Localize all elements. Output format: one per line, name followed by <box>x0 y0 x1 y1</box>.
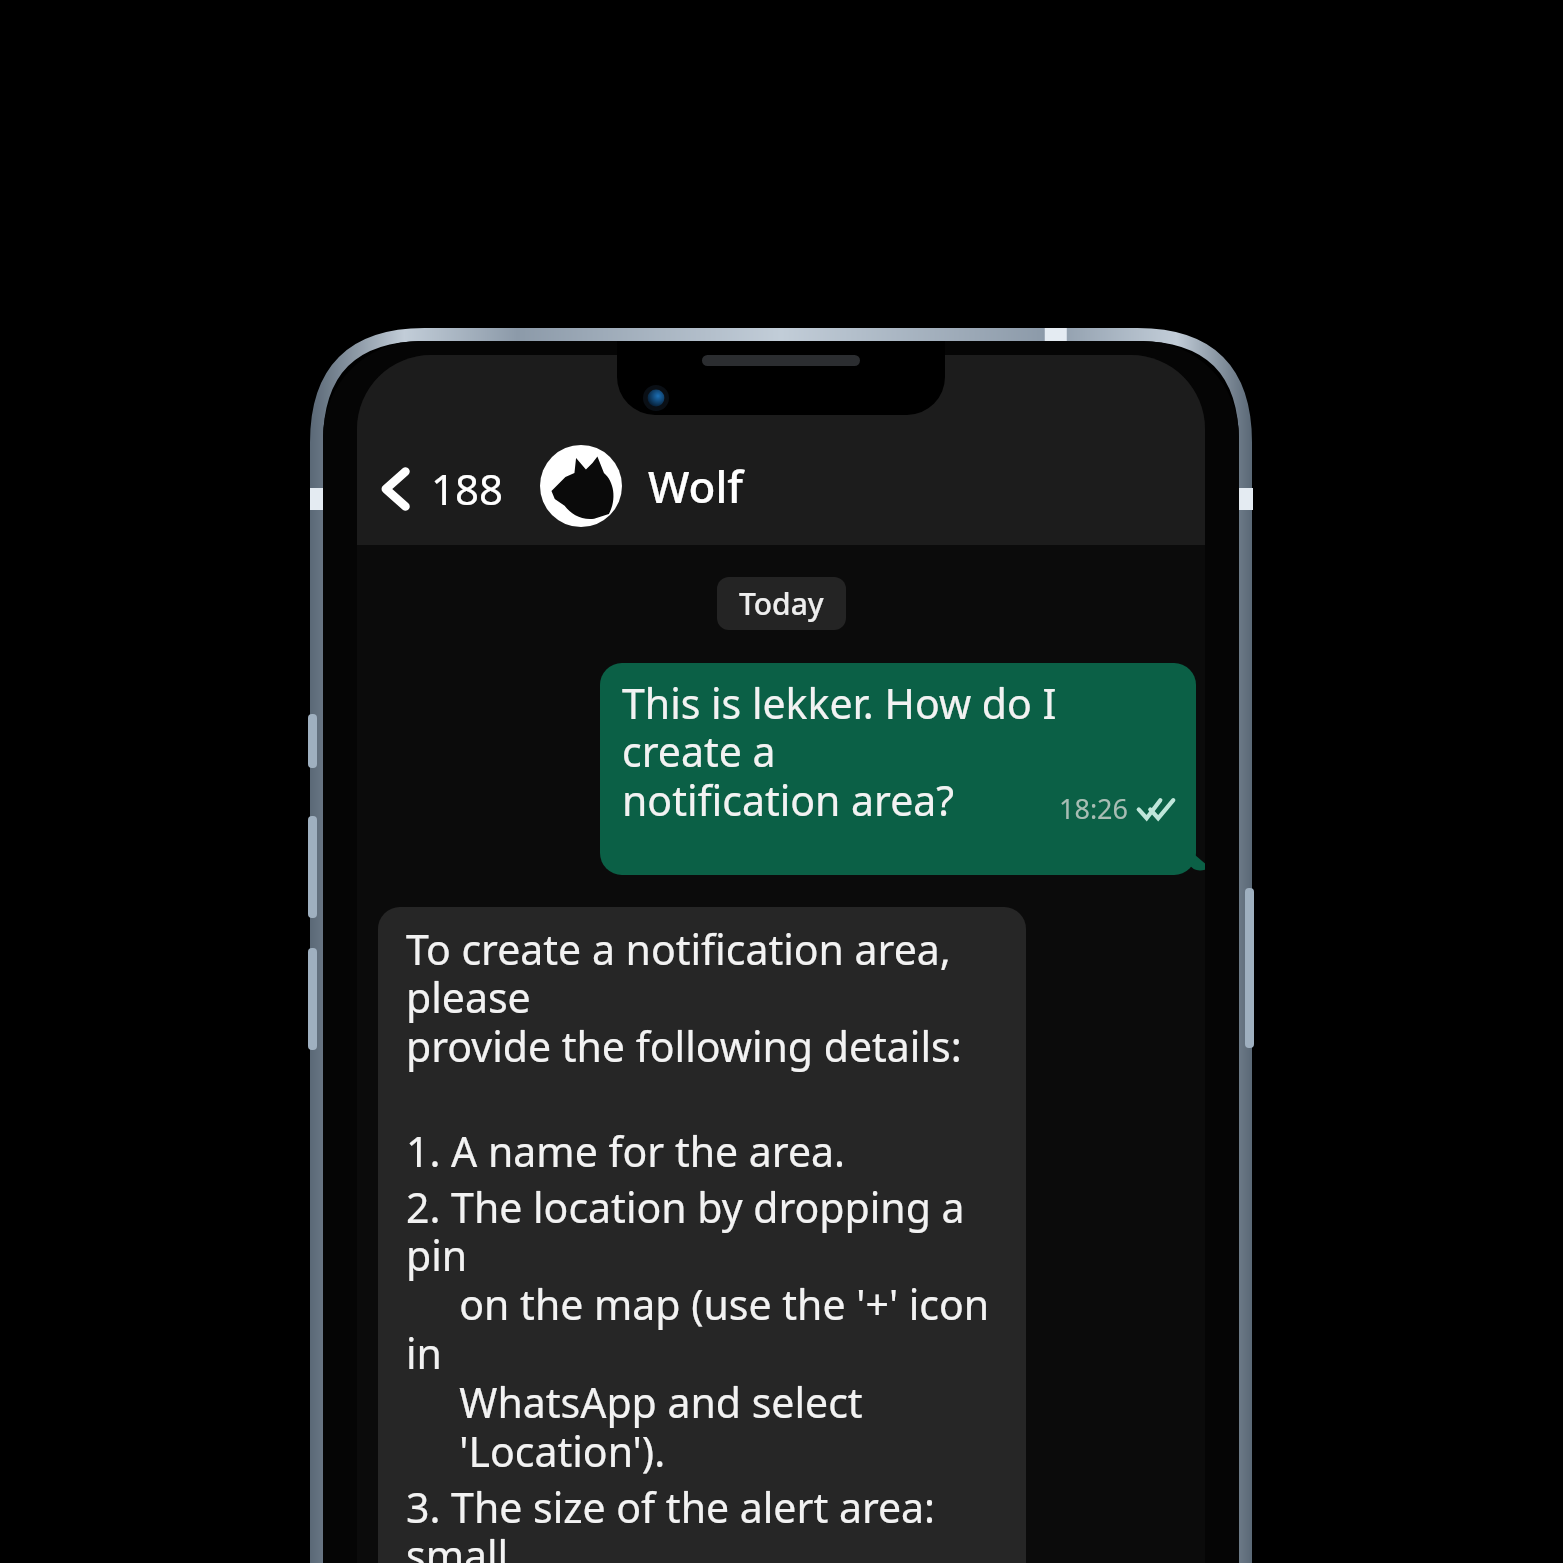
other: Wolf profile photo <box>540 445 622 527</box>
staticText: 1. A name for the area. <box>406 1123 846 1179</box>
staticText: Wolf <box>648 456 743 516</box>
staticText: This is lekker. How do I create a notifi… <box>622 675 1174 828</box>
staticText: 2. The location by dropping a pin on the… <box>406 1179 1006 1479</box>
staticText: To create a notification area, please pr… <box>406 921 1006 1074</box>
button[interactable]: Wolf profile photo <box>540 445 743 527</box>
staticText: 188 <box>431 460 504 517</box>
button[interactable]: 188 <box>371 456 512 521</box>
button[interactable]: Today <box>717 577 846 630</box>
button[interactable]: To create a notification area, please pr… <box>378 907 1026 1563</box>
staticText: 18:26 <box>1059 790 1129 827</box>
staticText: Today <box>739 583 824 624</box>
button[interactable]: This is lekker. How do I create a notifi… <box>600 663 1196 875</box>
staticText: 3. The size of the alert area: small (20… <box>406 1479 1006 1563</box>
